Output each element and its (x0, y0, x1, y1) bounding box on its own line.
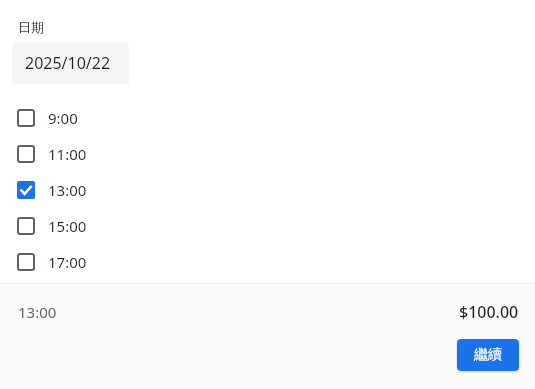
staticText: 2025/10/22 (25, 52, 111, 74)
button[interactable]: 13:00 (0, 172, 535, 208)
button[interactable]: 15:00 (0, 208, 535, 244)
staticText: 13:00 (18, 302, 57, 322)
staticText: 日期 (18, 19, 44, 35)
staticText: 13:00 (48, 180, 87, 200)
staticText: 繼續 (474, 346, 502, 364)
button[interactable]: 繼續 (457, 339, 519, 371)
staticText: $100.00 (459, 301, 519, 323)
staticText: 9:00 (48, 108, 78, 128)
button[interactable]: 11:00 (0, 136, 535, 172)
staticText: 17:00 (48, 252, 87, 272)
button[interactable]: 17:00 (0, 244, 535, 280)
button[interactable]: 9:00 (0, 100, 535, 136)
button[interactable]: 2025/10/22 (12, 42, 129, 84)
staticText: 11:00 (48, 144, 87, 164)
staticText: 15:00 (48, 216, 87, 236)
